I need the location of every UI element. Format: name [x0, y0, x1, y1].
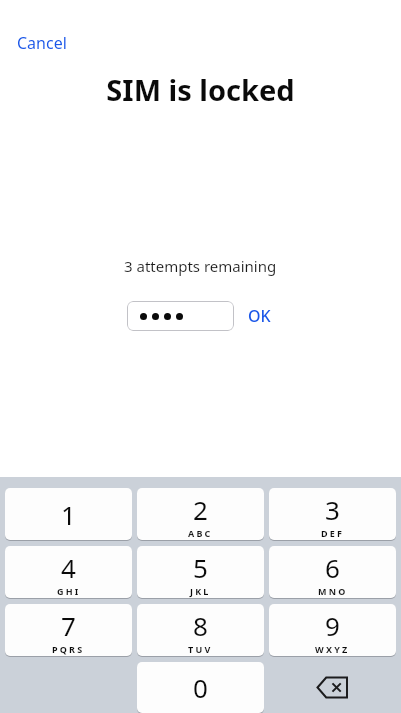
- staticText: 3: [325, 492, 340, 527]
- button[interactable]: 4: [5, 546, 132, 598]
- button[interactable]: 9: [269, 604, 396, 656]
- staticText: 4: [61, 550, 76, 585]
- button[interactable]: 1: [5, 488, 132, 540]
- button[interactable]: 5: [137, 546, 264, 598]
- staticText: 2: [193, 492, 208, 527]
- button[interactable]: OK: [244, 302, 275, 330]
- button[interactable]: 0: [137, 662, 264, 713]
- staticText: GHI: [57, 585, 81, 597]
- staticText: OK: [248, 305, 271, 327]
- staticText: SIM is locked: [106, 70, 295, 109]
- button[interactable]: 8: [137, 604, 264, 656]
- staticText: 6: [325, 550, 340, 585]
- staticText: 1: [61, 497, 76, 532]
- button[interactable]: 7: [5, 604, 132, 656]
- staticText: JKL: [190, 585, 211, 597]
- button[interactable]: 2: [137, 488, 264, 540]
- staticText: TUV: [188, 643, 213, 655]
- staticText: 0: [193, 670, 208, 705]
- button[interactable]: 6: [269, 546, 396, 598]
- staticText: Cancel: [17, 32, 67, 54]
- staticText: DEF: [321, 527, 345, 539]
- staticText: 7: [61, 608, 76, 643]
- staticText: PQRS: [52, 643, 85, 655]
- button[interactable]: Delete: [269, 662, 396, 713]
- staticText: WXYZ: [315, 643, 350, 655]
- button[interactable]: [127, 301, 234, 331]
- staticText: ABC: [188, 527, 213, 539]
- staticText: 9: [325, 608, 340, 643]
- staticText: 5: [193, 550, 208, 585]
- staticText: 3 attempts remaining: [124, 256, 277, 276]
- staticText: 8: [193, 608, 208, 643]
- staticText: MNO: [318, 585, 348, 597]
- button[interactable]: 3: [269, 488, 396, 540]
- button[interactable]: Cancel: [12, 29, 72, 57]
